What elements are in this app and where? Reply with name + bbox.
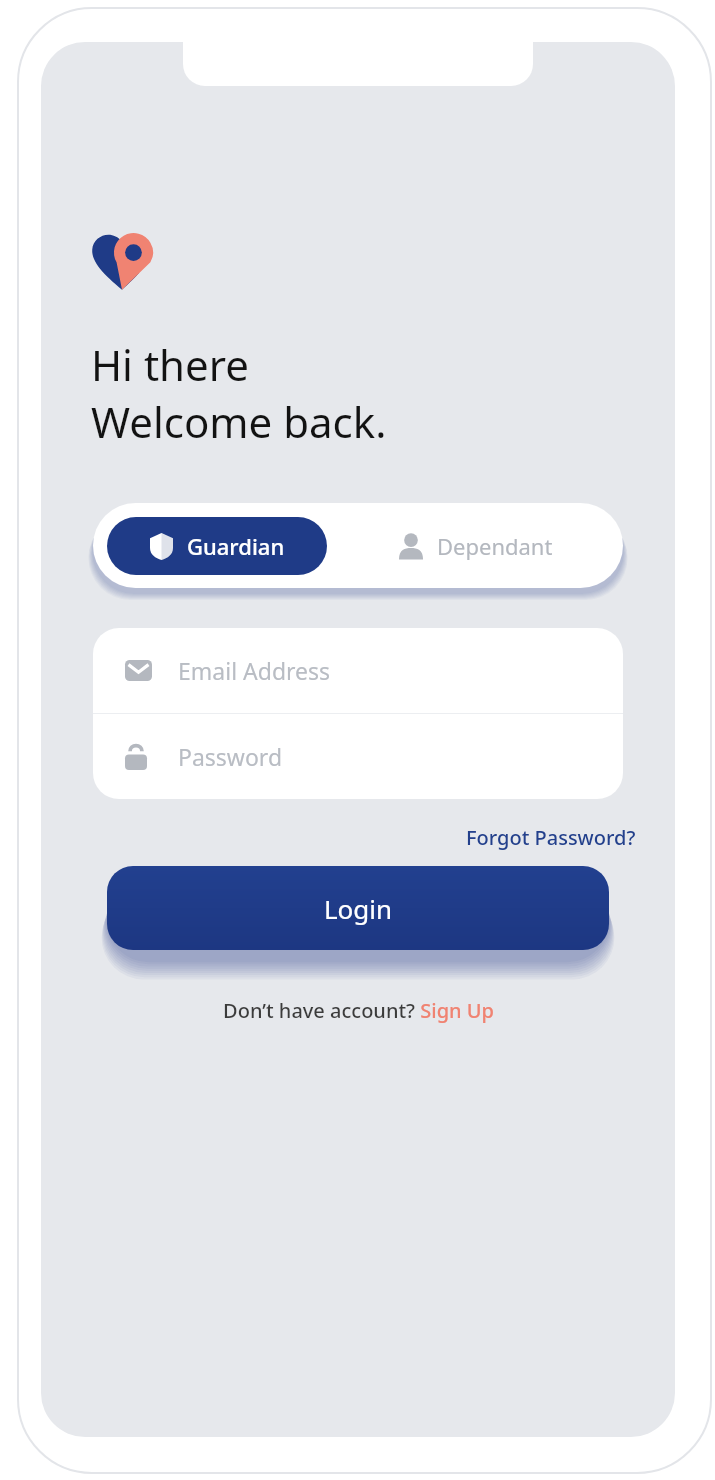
button[interactable]: Don’t have account? Sign Up	[219, 994, 498, 1027]
staticText: Dependant	[437, 531, 553, 561]
staticText: Hi there	[91, 336, 249, 393]
staticText: Password	[178, 741, 283, 772]
staticText: Forgot Password?	[466, 824, 636, 851]
button[interactable]: Forgot Password?	[464, 822, 638, 853]
button[interactable]: Guardian	[107, 517, 327, 575]
staticText: Welcome back.	[91, 393, 387, 450]
button[interactable]: Login	[107, 866, 609, 950]
staticText: Guardian	[187, 531, 285, 561]
staticText: Login	[324, 891, 393, 926]
button[interactable]: Email Address	[93, 628, 623, 713]
button[interactable]: Dependant	[327, 517, 623, 575]
button[interactable]: Password	[93, 714, 623, 799]
staticText: Email Address	[178, 655, 331, 686]
staticText: Don’t have account? Sign Up	[223, 997, 494, 1024]
